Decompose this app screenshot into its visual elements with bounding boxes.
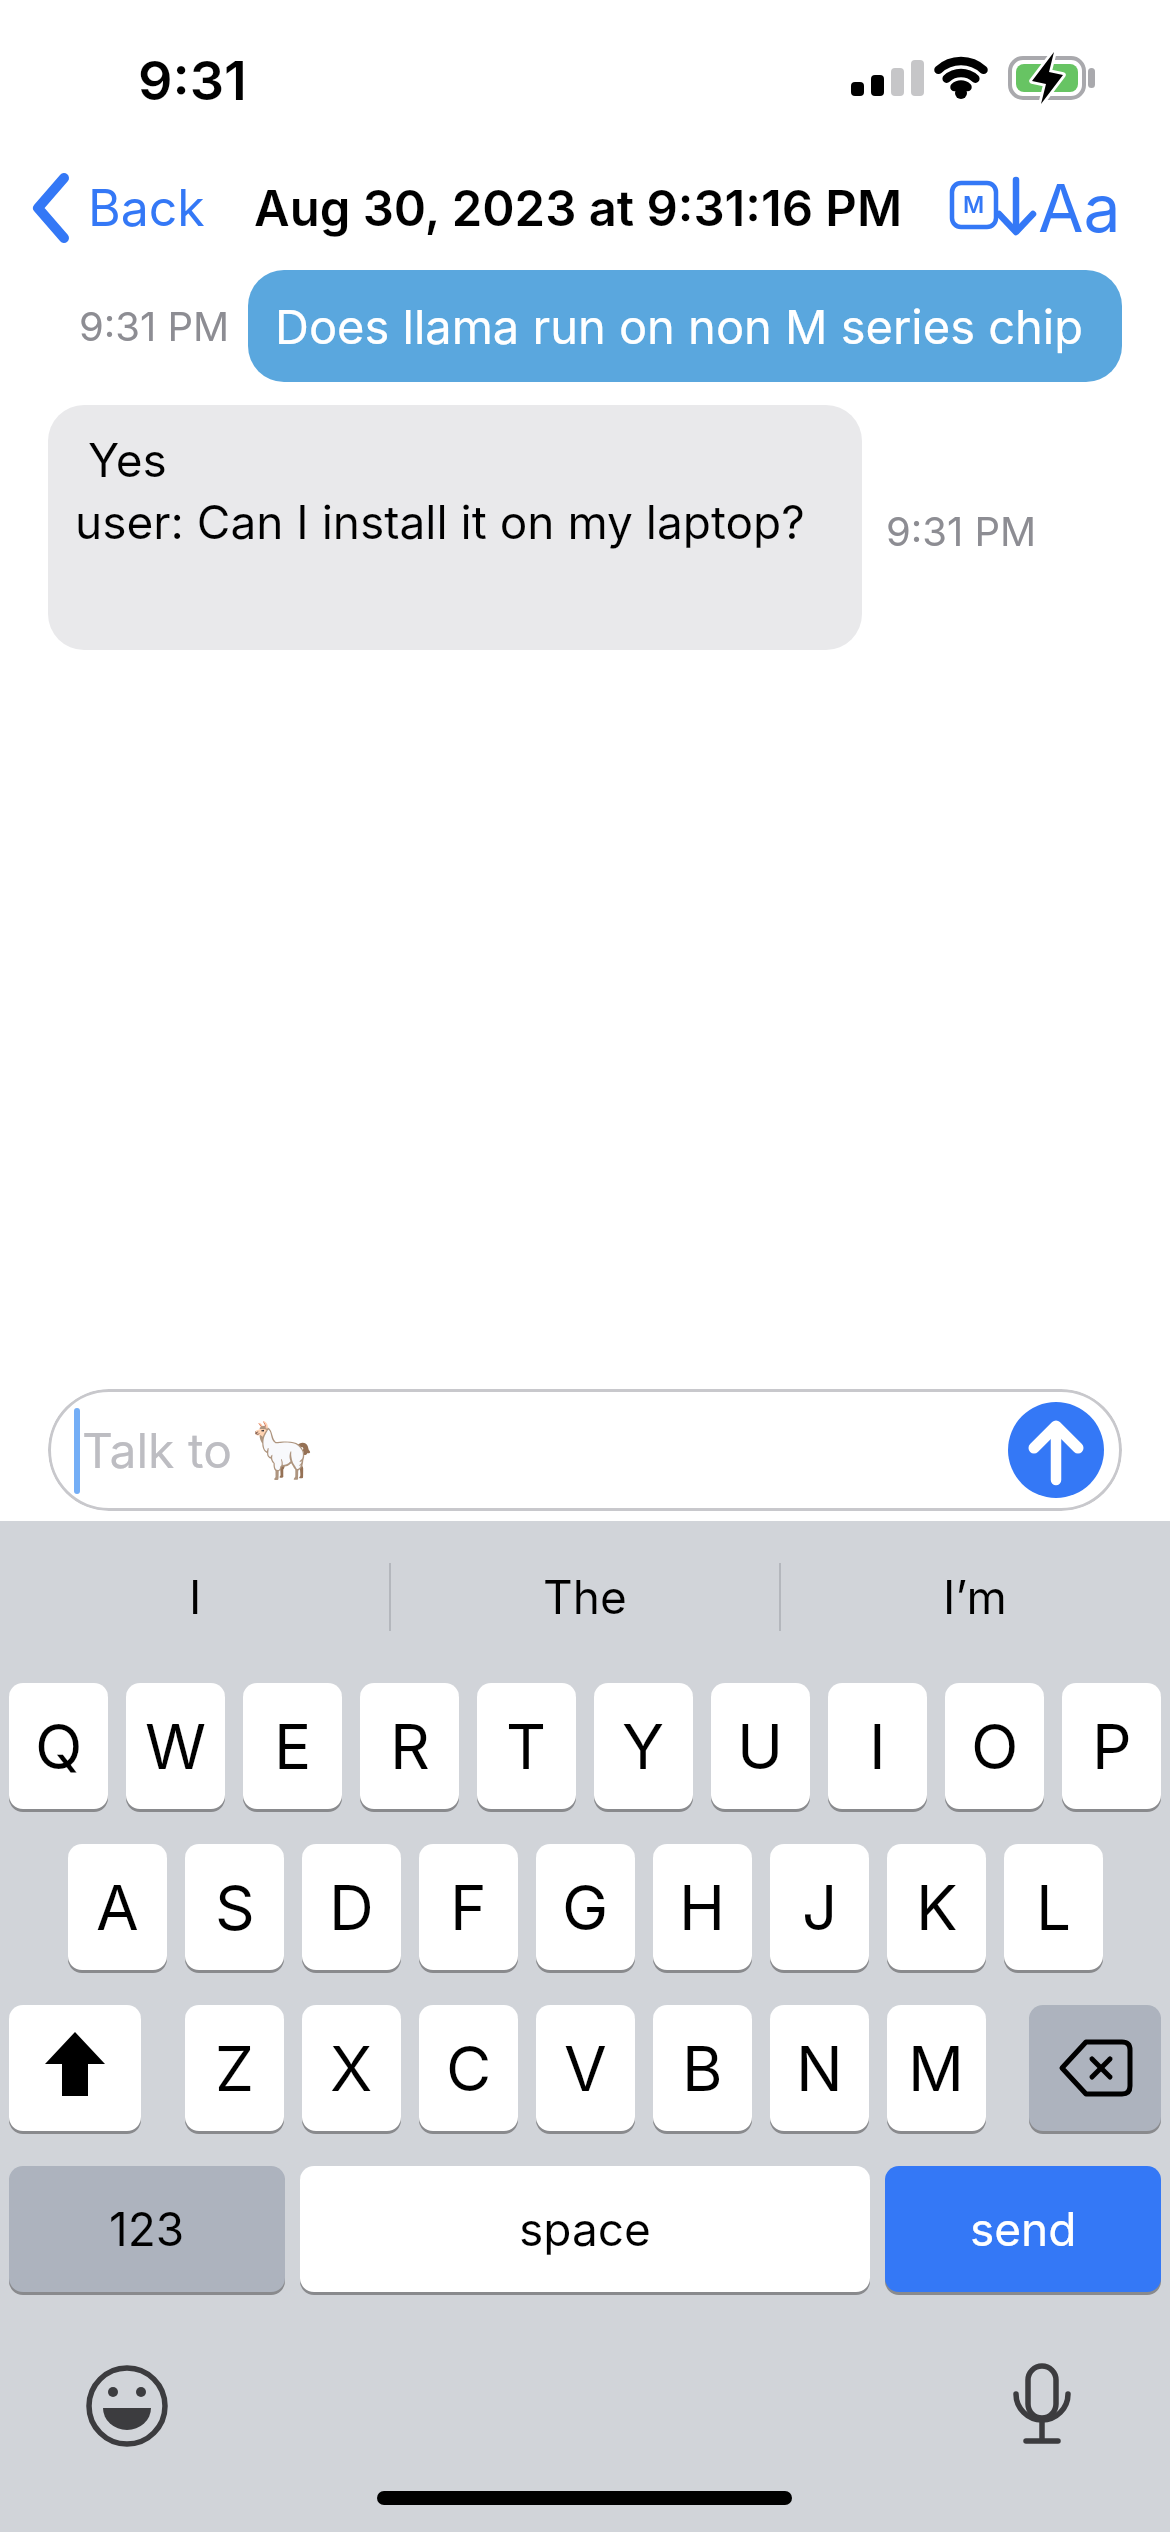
staticText: space [519,2201,651,2257]
button[interactable]: Does llama run on non M series chip [248,270,1122,382]
staticText: M [963,191,985,219]
button[interactable] [9,2005,141,2131]
button[interactable]: T [477,1683,576,1809]
staticText: I’m [943,1569,1007,1625]
button[interactable] [48,405,862,650]
staticText: P [1092,1709,1132,1784]
button[interactable]: I [10,1545,380,1649]
button[interactable]: W [126,1683,225,1809]
button[interactable]: B [653,2005,752,2131]
button[interactable]: G [536,1844,635,1970]
staticText: Yes [88,432,167,488]
button[interactable]: P [1062,1683,1161,1809]
staticText: 123 [109,2201,185,2257]
staticText: Talk to [82,1421,232,1479]
staticText: M [908,2031,965,2106]
button[interactable]: M [887,2005,986,2131]
staticText: 9:31 PM [886,507,1037,555]
button[interactable] [20,168,240,248]
button[interactable]: Z [185,2005,284,2131]
button[interactable]: Y [594,1683,693,1809]
staticText: T [506,1709,547,1784]
staticText: H [679,1870,726,1945]
button[interactable] [1008,1402,1104,1498]
staticText: E [274,1709,312,1784]
button[interactable]: D [302,1844,401,1970]
staticText: 9:31 [138,48,247,113]
button[interactable] [992,2356,1092,2456]
staticText: U [737,1709,784,1784]
staticText: R [390,1709,430,1784]
staticText: Q [35,1709,83,1784]
button[interactable]: send [885,2166,1161,2292]
button[interactable]: Q [9,1683,108,1809]
staticText: Y [622,1709,665,1784]
staticText: The [543,1569,627,1625]
staticText: D [329,1870,374,1945]
staticText: Aa [1038,168,1121,248]
button[interactable]: K [887,1844,986,1970]
staticText: W [145,1709,207,1784]
button[interactable]: V [536,2005,635,2131]
staticText: A [96,1870,139,1945]
staticText: K [916,1870,958,1945]
button[interactable]: Talk to [48,1389,1122,1511]
staticText: 9:31 PM [79,302,230,350]
staticText: Z [215,2031,254,2106]
staticText: C [446,2031,492,2106]
staticText: L [1036,1870,1072,1945]
staticText: S [215,1870,255,1945]
staticText: I [869,1709,886,1784]
button[interactable]: S [185,1844,284,1970]
staticText: user: Can I install it on my laptop? [75,494,805,550]
button[interactable]: The [400,1545,770,1649]
button[interactable]: I [828,1683,927,1809]
button[interactable] [77,2356,177,2456]
button[interactable]: X [302,2005,401,2131]
button[interactable]: I’m [790,1545,1160,1649]
staticText: X [330,2031,373,2106]
button[interactable]: L [1004,1844,1103,1970]
staticText: F [450,1870,487,1945]
button[interactable] [1029,2005,1161,2131]
staticText: I [189,1569,202,1625]
staticText: Back [88,178,205,238]
staticText: 🦙 [249,1419,317,1482]
button[interactable]: F [419,1844,518,1970]
staticText: Does llama run on non M series chip [275,298,1083,355]
staticText: Aug 30, 2023 at 9:31:16 PM [254,179,903,238]
button[interactable]: R [360,1683,459,1809]
button[interactable]: 123 [9,2166,285,2292]
button[interactable]: space [300,2166,870,2292]
button[interactable]: E [243,1683,342,1809]
button[interactable]: A [68,1844,167,1970]
staticText: O [971,1709,1019,1784]
staticText: G [562,1870,609,1945]
button[interactable]: H [653,1844,752,1970]
button[interactable]: O [945,1683,1044,1809]
staticText: N [796,2031,843,2106]
button[interactable]: N [770,2005,869,2131]
staticText: J [802,1870,838,1945]
button[interactable]: J [770,1844,869,1970]
staticText: V [564,2031,607,2106]
staticText: send [970,2201,1077,2257]
staticText: B [682,2031,723,2106]
button[interactable]: U [711,1683,810,1809]
button[interactable]: C [419,2005,518,2131]
